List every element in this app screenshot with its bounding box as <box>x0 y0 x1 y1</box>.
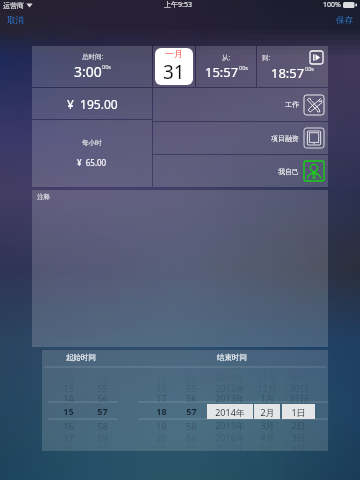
button[interactable]: 保存 <box>333 13 356 28</box>
button[interactable]: 2015年 <box>207 418 253 431</box>
staticText: 00s <box>239 64 248 71</box>
button[interactable]: ¥ 195.00 <box>32 88 152 119</box>
button[interactable]: 总时间: <box>32 46 152 87</box>
button[interactable]: 59 <box>91 432 113 443</box>
button[interactable]: 结束时间 <box>212 353 252 362</box>
staticText: 18:57 <box>271 64 305 82</box>
staticText: 58 <box>186 420 197 431</box>
staticText: 15 <box>63 405 74 416</box>
button[interactable]: 一月 <box>153 46 195 87</box>
staticText: 3日 <box>291 431 306 443</box>
staticText: 15:57 <box>205 63 239 81</box>
button[interactable]: 55 <box>180 382 202 393</box>
button[interactable]: 我自己 <box>153 155 328 187</box>
staticText: 19 <box>156 420 167 431</box>
staticText: 2013年 <box>215 392 245 404</box>
staticText: 13 <box>63 382 74 393</box>
staticText: 20 <box>156 432 167 443</box>
button[interactable]: 56 <box>91 392 113 403</box>
button[interactable]: 1月 <box>254 391 280 404</box>
button[interactable]: 58 <box>180 420 202 431</box>
button[interactable]: 12月 <box>254 381 280 394</box>
button[interactable]: 3月 <box>254 418 280 431</box>
button[interactable]: 18 <box>57 442 79 453</box>
button[interactable]: 16 <box>57 420 79 431</box>
button[interactable]: 00 <box>91 442 113 453</box>
button[interactable]: 16 <box>150 382 172 393</box>
staticText: 上午9:53 <box>164 0 192 10</box>
button[interactable]: 19 <box>150 420 172 431</box>
button[interactable]: 每小时 <box>32 120 152 187</box>
button[interactable]: 到: <box>257 46 328 87</box>
button[interactable]: 14 <box>57 392 79 403</box>
button[interactable]: 4日 <box>282 441 315 454</box>
other: Work <box>303 94 325 116</box>
button[interactable]: 56 <box>180 392 202 403</box>
button[interactable]: 00 <box>180 442 202 453</box>
staticText: 项目融资 <box>271 134 299 143</box>
staticText: 3:00 <box>74 62 102 81</box>
button[interactable]: 4月 <box>254 430 280 443</box>
staticText: 31日 <box>289 392 309 404</box>
button[interactable]: 13 <box>57 382 79 393</box>
button[interactable]: 起始时间 <box>61 353 101 362</box>
staticText: 59 <box>97 432 108 443</box>
staticText: 取消 <box>7 15 24 26</box>
button[interactable]: 58 <box>91 420 113 431</box>
other: Project funding <box>303 127 325 149</box>
staticText: 2016年 <box>215 431 245 443</box>
button[interactable]: 17 <box>150 392 172 403</box>
button[interactable]: 15 <box>57 405 79 416</box>
button[interactable]: 3日 <box>282 430 315 443</box>
staticText: 55 <box>186 382 197 393</box>
button[interactable]: 5月 <box>254 441 280 454</box>
staticText: 运营商 <box>3 1 24 10</box>
button[interactable]: 18 <box>150 405 172 416</box>
button[interactable]: 57 <box>91 405 113 416</box>
staticText: 结束时间 <box>217 353 247 362</box>
button[interactable]: 30日 <box>282 381 315 394</box>
staticText: 30日 <box>289 382 309 394</box>
button[interactable]: 2014年 <box>207 404 253 419</box>
button[interactable]: 项目融资 <box>153 122 328 154</box>
button[interactable]: 从: <box>196 46 256 87</box>
staticText: 56 <box>186 392 197 403</box>
button[interactable]: 2017年 <box>207 441 253 454</box>
button[interactable]: 2日 <box>282 418 315 431</box>
staticText: 1月 <box>260 392 275 404</box>
staticText: 55 <box>97 382 108 393</box>
staticText: 59 <box>186 432 197 443</box>
staticText: 00s <box>305 65 314 72</box>
button[interactable]: 2016年 <box>207 430 253 443</box>
staticText: 5月 <box>260 442 275 454</box>
button[interactable]: 20 <box>150 432 172 443</box>
staticText: 2月 <box>260 406 275 418</box>
button[interactable]: 2013年 <box>207 391 253 404</box>
button[interactable]: 31日 <box>282 391 315 404</box>
staticText: 4日 <box>291 442 306 454</box>
button[interactable]: 取消 <box>4 13 27 28</box>
staticText: 工作 <box>285 100 299 109</box>
button[interactable]: 工作 <box>153 88 328 121</box>
button[interactable]: 2012年 <box>207 381 253 394</box>
button[interactable]: 21 <box>150 442 172 453</box>
button[interactable]: 1日 <box>282 404 315 419</box>
staticText: 18 <box>156 405 167 416</box>
button[interactable]: 注释 <box>32 190 328 347</box>
staticText: 总时间: <box>82 52 104 61</box>
button[interactable]: 55 <box>91 382 113 393</box>
button[interactable]: 2月 <box>254 404 280 419</box>
button[interactable]: 57 <box>180 405 202 416</box>
button[interactable]: 59 <box>180 432 202 443</box>
